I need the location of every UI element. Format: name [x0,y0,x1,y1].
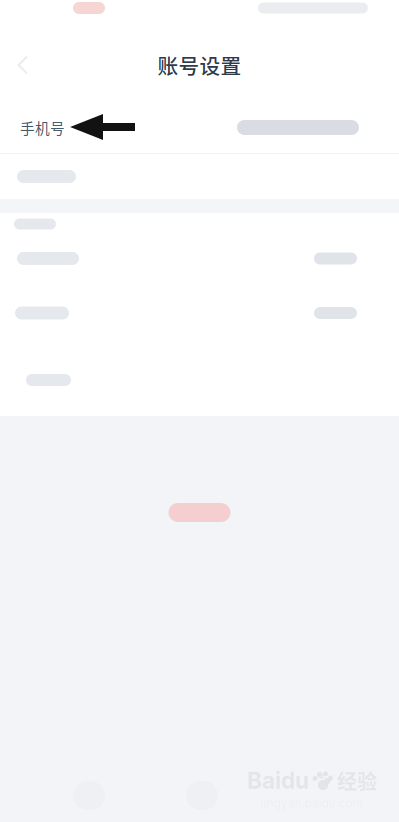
staticText: 账号设置 [157,50,241,80]
staticText: Baidu [247,767,309,794]
staticText: 手机号 [20,117,65,138]
button[interactable]: Setting [0,344,399,416]
button[interactable]: Setting [0,154,399,199]
button[interactable]: 手机号 [0,102,399,153]
staticText: 经验 [337,766,377,795]
button[interactable]: 退出登录 [168,503,230,522]
button[interactable]: Setting [0,235,399,282]
button[interactable]: Setting [0,282,399,344]
button[interactable]: Setting [0,213,399,235]
